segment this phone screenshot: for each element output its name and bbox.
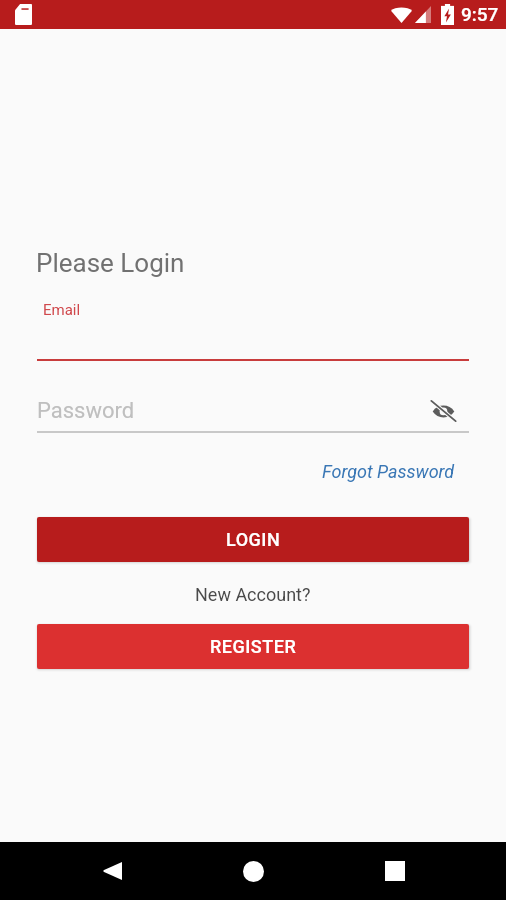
- button[interactable]: Email: [37, 296, 469, 362]
- staticText: LOGIN: [226, 529, 281, 550]
- staticText: New Account?: [195, 584, 311, 605]
- staticText: Email: [43, 301, 81, 319]
- button[interactable]: Home: [229, 847, 277, 895]
- button[interactable]: REGISTER: [37, 624, 469, 669]
- button[interactable]: Password: [37, 392, 469, 433]
- button[interactable]: Recent apps: [371, 847, 419, 895]
- button[interactable]: LOGIN: [37, 517, 469, 562]
- staticText: Password: [37, 398, 135, 424]
- button[interactable]: Show password: [424, 392, 462, 430]
- button[interactable]: Back: [87, 847, 135, 895]
- staticText: 9:57: [461, 3, 499, 25]
- staticText: Please Login: [36, 248, 185, 278]
- button[interactable]: Forgot Password: [322, 461, 455, 482]
- staticText: REGISTER: [210, 636, 297, 657]
